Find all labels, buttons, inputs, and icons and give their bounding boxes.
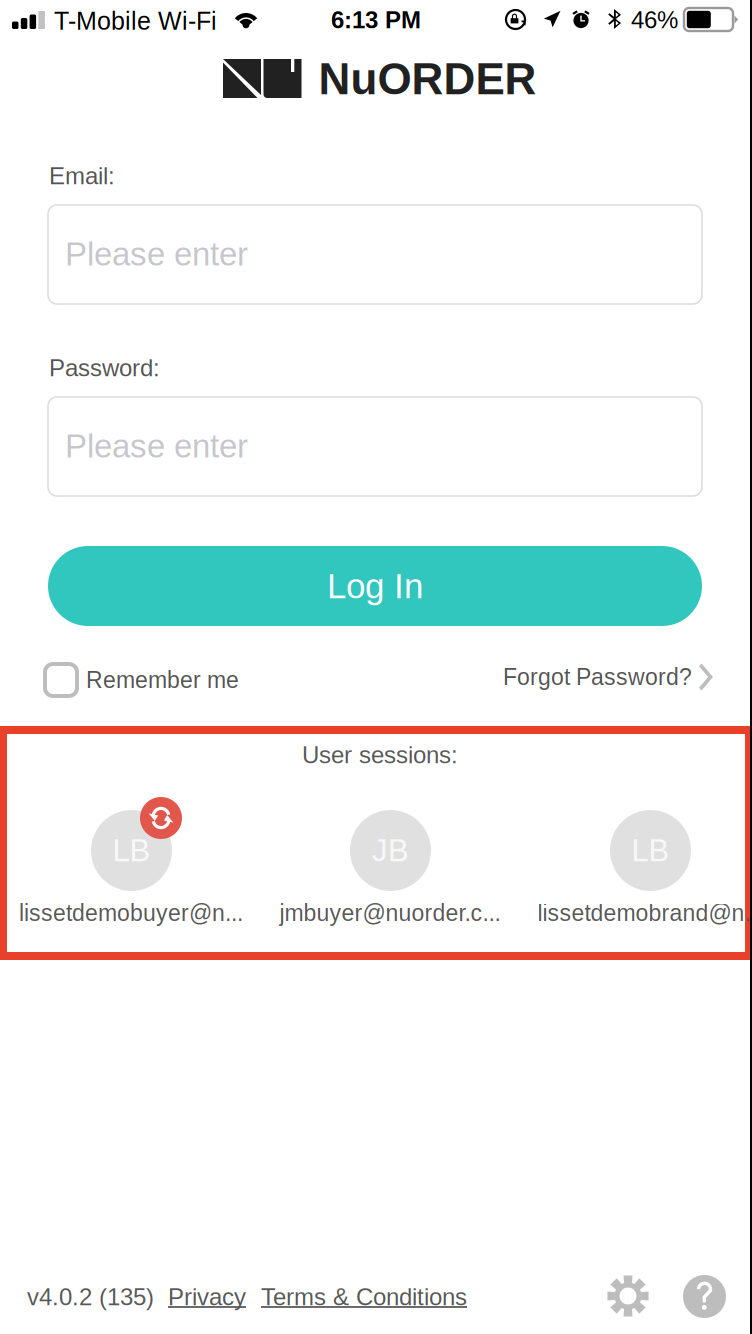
button[interactable]: Help [683,1275,726,1318]
staticText: Please enter [65,428,248,464]
button[interactable]: Settings [607,1275,649,1317]
staticText: User sessions: [302,742,458,768]
staticText: LB [631,833,669,868]
button[interactable]: LB [0,726,752,960]
button[interactable]: JB [0,726,752,960]
staticText: JB [372,833,409,868]
staticText: v4.0.2 (135) [27,1284,154,1310]
staticText: Privacy [168,1284,246,1310]
button[interactable]: Log In [48,546,702,626]
staticText: lissetdemobrand@n... [537,900,752,926]
staticText: Please enter [65,236,248,272]
staticText: T-Mobile Wi-Fi [54,7,217,35]
staticText: Forgot Password? [503,664,692,690]
staticText: Email: [49,163,115,189]
button[interactable]: LB [0,726,752,960]
staticText: 6:13 PM [331,7,421,33]
button[interactable]: Remember me [43,662,283,698]
staticText: Remember me [86,667,239,693]
staticText: NuORDER [318,54,536,104]
staticText: LB [112,833,150,868]
button[interactable]: Terms & Conditions [261,1284,471,1310]
button[interactable]: Forgot Password? [503,663,713,690]
staticText: Log In [327,566,423,605]
staticText: Terms & Conditions [261,1284,467,1310]
staticText: 46% [631,7,678,33]
staticText: Password: [49,355,160,381]
staticText: lissetdemobuyer@n... [19,900,243,926]
button[interactable]: Privacy [168,1284,248,1310]
staticText: jmbuyer@nuorder.c... [279,900,500,926]
